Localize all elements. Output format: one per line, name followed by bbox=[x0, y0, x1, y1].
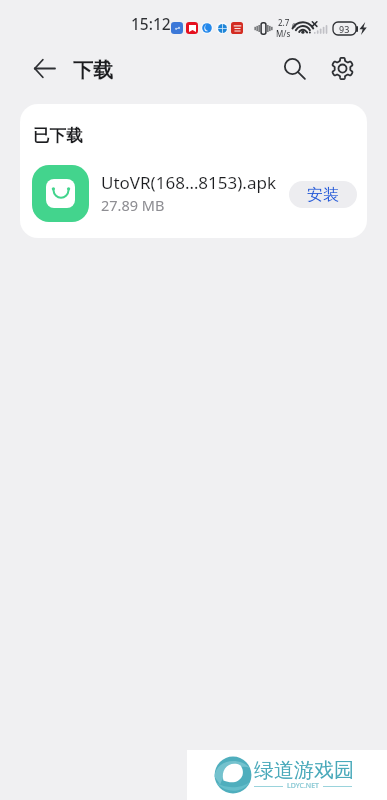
staticText: M/s bbox=[276, 28, 291, 39]
staticText: 27.89 MB bbox=[101, 195, 165, 215]
staticText: 6 bbox=[292, 21, 297, 31]
button[interactable]: Back bbox=[30, 54, 58, 82]
button[interactable]: Settings bbox=[329, 55, 355, 81]
staticText: 2.7 bbox=[278, 17, 290, 28]
staticText: 下载 bbox=[73, 58, 113, 83]
button[interactable]: 安装 bbox=[289, 181, 357, 208]
button[interactable]: Search bbox=[282, 56, 308, 82]
staticText: 15:12 bbox=[131, 13, 171, 34]
staticText: 已下载 bbox=[33, 125, 83, 146]
staticText: 绿道游戏园 bbox=[254, 758, 354, 783]
staticText: 安装 bbox=[307, 185, 339, 205]
staticText: UtoVR(168…8153).apk bbox=[101, 171, 276, 194]
staticText: 93 bbox=[339, 23, 350, 35]
button[interactable]: UtoVR(168…8153).apk bbox=[20, 155, 367, 227]
staticText: LDYC.NET bbox=[287, 781, 319, 791]
